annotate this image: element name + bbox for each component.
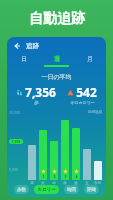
staticText: 歩数 xyxy=(17,187,26,193)
staticText: 一日の平均 xyxy=(41,73,72,81)
staticText: 5,000 xyxy=(9,167,18,172)
button[interactable]: カロリー xyxy=(34,185,59,194)
staticText: 目標達成 xyxy=(88,110,102,114)
staticText: キロカロリー xyxy=(70,100,95,105)
button[interactable]: 日 xyxy=(7,54,40,68)
staticText: 距離 xyxy=(87,187,96,193)
staticText: 水 xyxy=(52,181,56,185)
staticText: 歩 xyxy=(34,100,39,106)
staticText: 木 xyxy=(63,181,67,185)
button[interactable]: Back xyxy=(11,40,23,52)
button[interactable]: 歩数 xyxy=(14,185,29,194)
staticText: 自動追跡 xyxy=(29,10,85,28)
staticText: 今日 xyxy=(94,181,101,185)
staticText: 542 xyxy=(76,84,97,100)
staticText: 7,356 xyxy=(25,84,56,100)
staticText: 火 xyxy=(41,181,45,185)
staticText: カロリー xyxy=(37,187,56,193)
staticText: 4 xyxy=(75,174,78,179)
staticText: 月 xyxy=(87,55,93,63)
button[interactable]: 月 xyxy=(73,54,106,68)
button[interactable]: 週 xyxy=(40,54,73,68)
staticText: 土 xyxy=(85,181,89,185)
staticText: 7,356 xyxy=(11,139,21,144)
staticText: 10,000 xyxy=(9,110,20,115)
staticText: 月 xyxy=(30,181,34,185)
staticText: 日 xyxy=(21,55,27,63)
staticText: 金 xyxy=(74,181,78,185)
staticText: 時間 xyxy=(67,187,76,193)
staticText: 1 xyxy=(42,174,45,179)
staticText: 追跡 xyxy=(26,42,39,50)
staticText: 3 xyxy=(64,174,67,179)
staticText: 2 xyxy=(53,174,56,179)
staticText: 週 xyxy=(54,55,60,63)
button[interactable]: 時間 xyxy=(64,185,79,194)
button[interactable]: 距離 xyxy=(84,185,99,194)
